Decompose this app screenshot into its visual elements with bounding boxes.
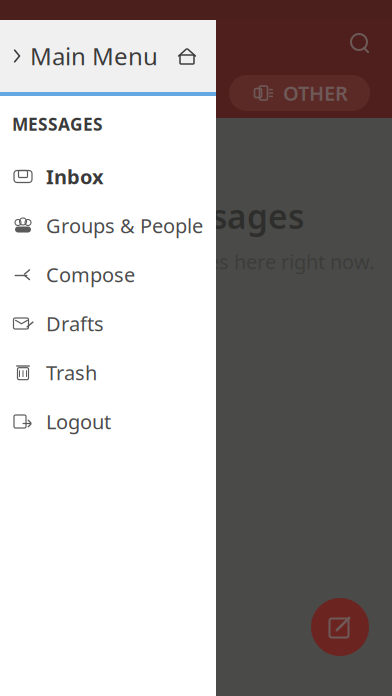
button[interactable]: Trash — [0, 348, 216, 397]
button[interactable]: Main Menu — [0, 40, 158, 72]
staticText: You have no messages here right now. — [18, 248, 374, 275]
button[interactable]: Search — [348, 31, 374, 57]
staticText: Drafts — [46, 310, 104, 337]
button[interactable]: Drafts — [0, 299, 216, 348]
button[interactable]: Compose — [0, 250, 216, 299]
button[interactable]: Logout — [0, 397, 216, 446]
staticText: MESSAGES — [12, 112, 103, 135]
button[interactable]: Groups & People — [0, 201, 216, 250]
staticText: Logout — [46, 408, 111, 435]
button[interactable]: Compose message — [311, 598, 369, 656]
button[interactable]: Inbox — [0, 152, 216, 201]
button[interactable]: Home — [176, 46, 216, 66]
staticText: Compose — [46, 261, 135, 288]
staticText: Groups & People — [46, 212, 203, 239]
staticText: Main Menu — [30, 40, 158, 72]
staticText: OTHER — [283, 80, 348, 106]
button[interactable]: OTHER — [229, 75, 370, 111]
staticText: Trash — [46, 359, 97, 386]
staticText: Inbox — [46, 163, 104, 190]
staticText: No Messages — [88, 194, 304, 238]
